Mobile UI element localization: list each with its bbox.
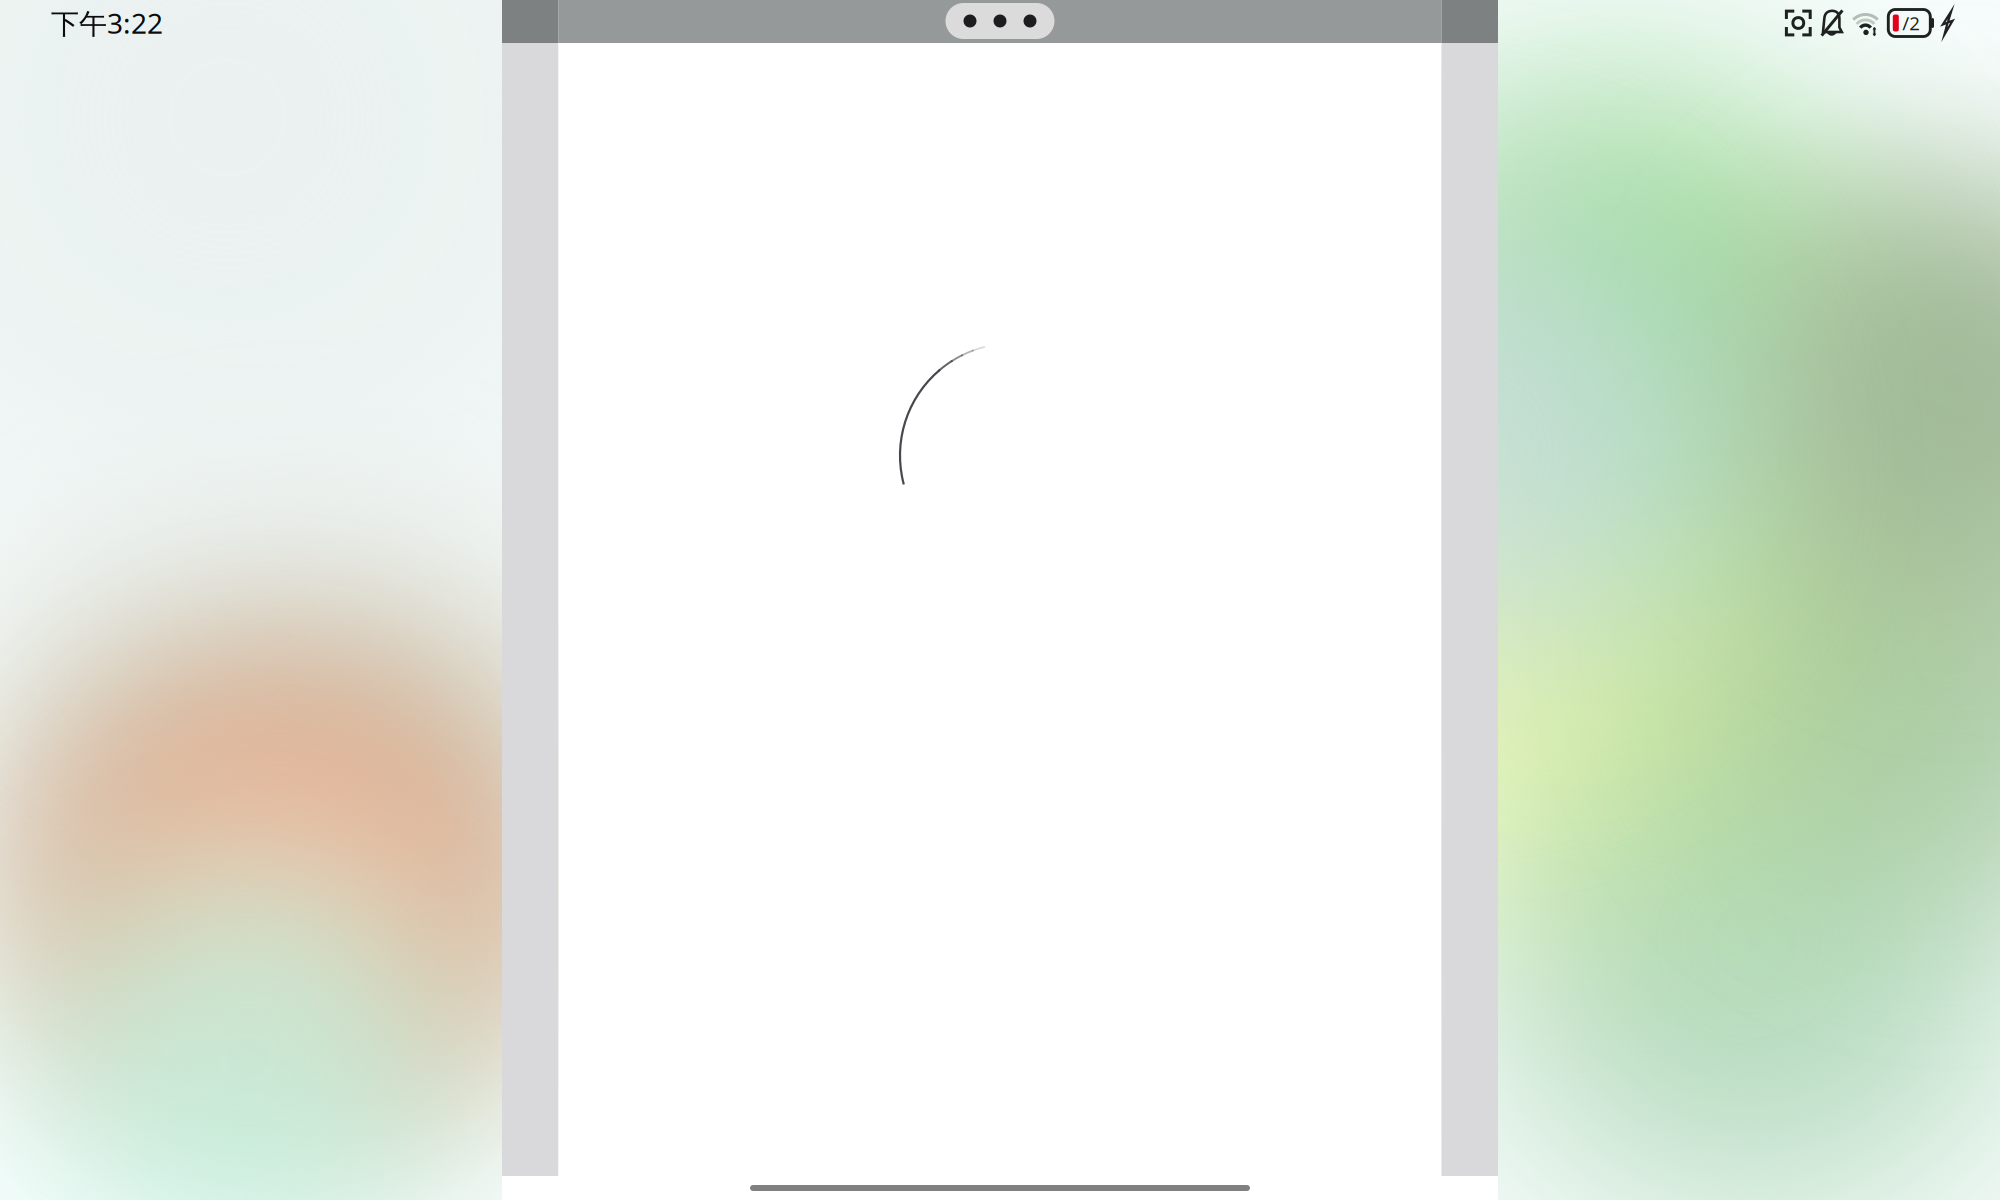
button[interactable]: Multitasking controls — [945, 0, 1054, 39]
staticText: /2 — [1902, 11, 1920, 35]
staticText: 下午3:22 — [51, 4, 163, 42]
